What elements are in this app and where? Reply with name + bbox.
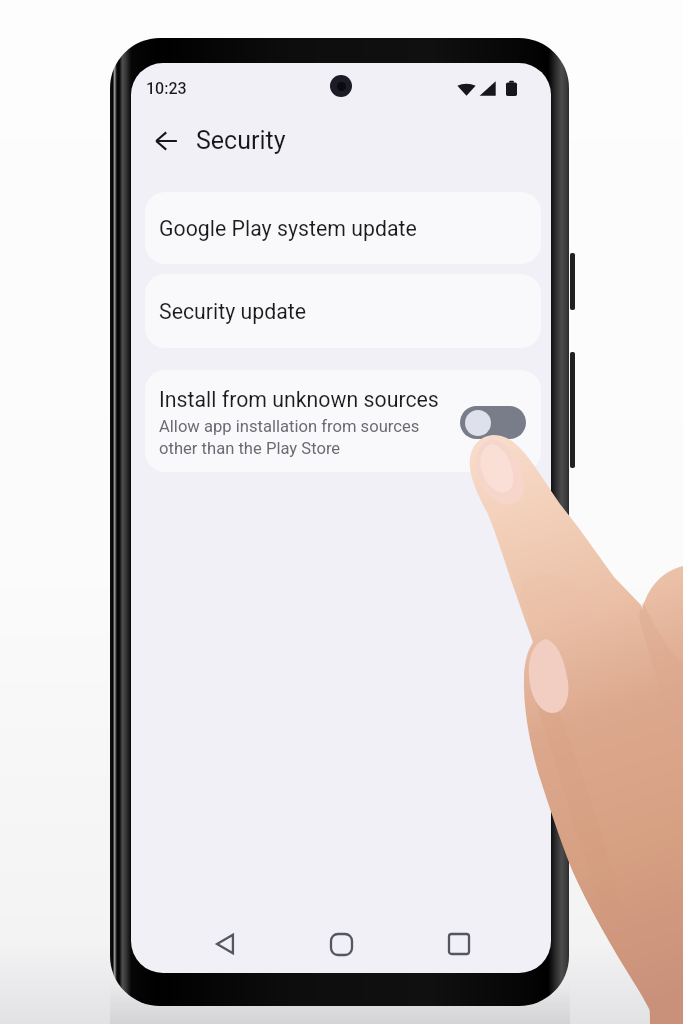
staticText: Google Play system update bbox=[159, 216, 417, 241]
button[interactable]: Security update bbox=[145, 274, 541, 348]
staticText: 10:23 bbox=[146, 79, 187, 98]
button[interactable]: Back bbox=[145, 119, 189, 163]
button[interactable]: Back bbox=[202, 921, 248, 967]
staticText: Security update bbox=[159, 299, 307, 324]
button[interactable]: Install from unknown sources bbox=[145, 370, 541, 472]
staticText: Security bbox=[196, 126, 286, 155]
button[interactable]: Recent apps bbox=[436, 921, 482, 967]
button[interactable]: Home bbox=[318, 921, 364, 967]
staticText: Allow app installation from sources othe… bbox=[159, 417, 420, 458]
button[interactable]: Install from unknown sources toggle bbox=[460, 406, 526, 439]
staticText: Install from unknown sources bbox=[159, 387, 439, 412]
button[interactable]: Google Play system update bbox=[145, 192, 541, 264]
